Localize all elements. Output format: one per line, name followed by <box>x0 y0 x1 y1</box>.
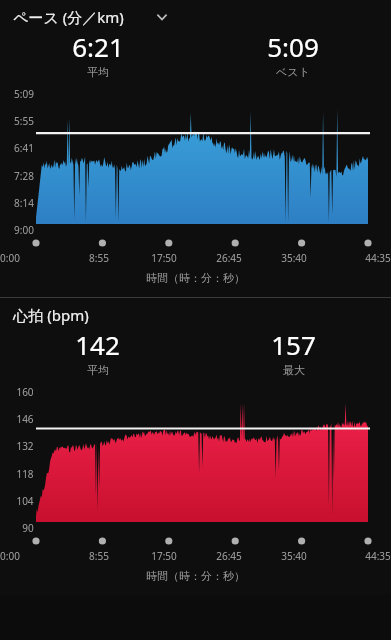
staticText: 8:55 <box>89 549 109 563</box>
staticText: 5:09 <box>14 87 34 101</box>
staticText: 17:50 <box>151 251 177 265</box>
staticText: 142 <box>75 327 120 362</box>
staticText: 104 <box>16 494 34 508</box>
other: Change metric <box>152 7 172 27</box>
staticText: 7:28 <box>14 169 34 183</box>
staticText: ペース (分／km) <box>13 7 124 27</box>
staticText: 44:35 <box>365 251 391 265</box>
staticText: 118 <box>16 467 34 481</box>
staticText: 9:00 <box>14 223 34 237</box>
staticText: 6:41 <box>14 141 34 155</box>
staticText: 6:21 <box>72 29 124 64</box>
staticText: 132 <box>16 439 34 453</box>
staticText: 最大 <box>283 363 305 377</box>
staticText: 心拍 (bpm) <box>13 305 89 325</box>
staticText: 8:14 <box>14 196 34 210</box>
staticText: 0:00 <box>0 549 20 563</box>
staticText: 26:45 <box>216 549 242 563</box>
staticText: 17:50 <box>151 549 177 563</box>
staticText: 8:55 <box>89 251 109 265</box>
staticText: 90 <box>22 521 34 535</box>
button[interactable]: 心拍 (bpm) <box>0 298 391 327</box>
staticText: 時間（時：分：秒） <box>146 271 245 285</box>
staticText: 157 <box>271 327 316 362</box>
staticText: 平均 <box>87 363 109 377</box>
staticText: 26:45 <box>216 251 242 265</box>
staticText: 44:35 <box>365 549 391 563</box>
staticText: 0:00 <box>0 251 20 265</box>
staticText: ベスト <box>276 65 310 79</box>
staticText: 160 <box>16 385 34 399</box>
staticText: 146 <box>16 412 34 426</box>
staticText: 35:40 <box>281 549 307 563</box>
button[interactable]: ペース (分／km) <box>0 0 391 29</box>
staticText: 35:40 <box>281 251 307 265</box>
staticText: 時間（時：分：秒） <box>146 569 245 583</box>
staticText: 5:09 <box>267 29 319 64</box>
staticText: 5:55 <box>14 114 34 128</box>
staticText: 平均 <box>87 65 109 79</box>
